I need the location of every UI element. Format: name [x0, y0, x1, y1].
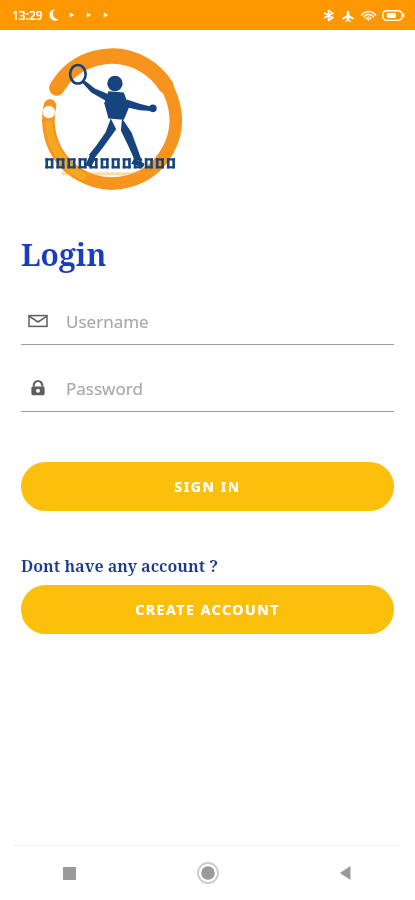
button[interactable]: CREATE ACCOUNT — [21, 585, 394, 634]
staticText: 13:29 — [12, 7, 43, 23]
staticText: Dont have any account ? — [21, 555, 219, 577]
button[interactable]: Password — [21, 372, 394, 412]
button[interactable]: Username — [21, 305, 394, 345]
button[interactable]: Back — [277, 846, 415, 900]
staticText: Login — [21, 234, 107, 275]
staticText: Username — [66, 310, 149, 333]
button[interactable]: Recent apps — [0, 846, 139, 900]
button[interactable]: SIGN IN — [21, 462, 394, 511]
staticText: CREATE ACCOUNT — [135, 600, 280, 619]
button[interactable]: Home — [139, 846, 277, 900]
staticText: SIGN IN — [174, 477, 241, 496]
staticText: Password — [66, 377, 143, 400]
